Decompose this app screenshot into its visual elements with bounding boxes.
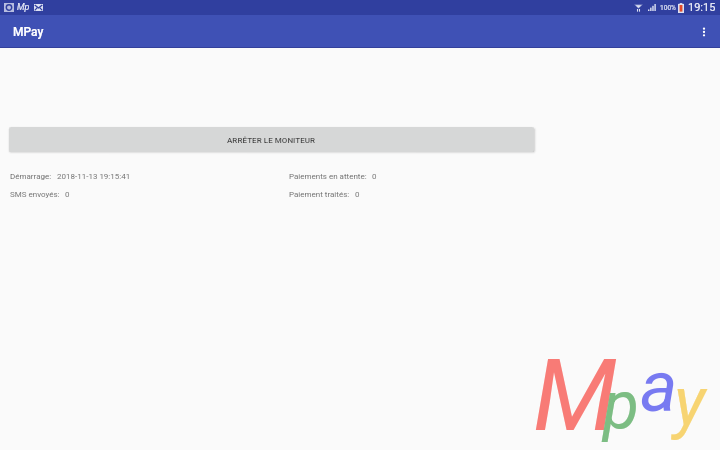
staticText: 0	[355, 190, 360, 199]
staticText: 0	[65, 190, 70, 199]
staticText: 19:15	[688, 1, 716, 14]
staticText: SMS envoyés:	[10, 190, 60, 199]
staticText: a	[640, 345, 678, 428]
staticText: y	[674, 362, 706, 442]
staticText: Démarrage:	[10, 172, 52, 181]
staticText: 2018-11-13 19:15:41	[57, 172, 131, 181]
button[interactable]: ARRÊTER LE MONITEUR	[9, 127, 534, 152]
staticText: M	[533, 338, 617, 450]
staticText: 0	[372, 172, 377, 181]
staticText: Paiements en attente:	[289, 172, 367, 181]
staticText: Mp	[17, 2, 30, 13]
staticText: Paiement traités:	[289, 190, 350, 199]
button[interactable]: More options	[687, 15, 720, 48]
staticText: MPay	[13, 25, 44, 39]
staticText: ARRÊTER LE MONITEUR	[227, 136, 316, 145]
staticText: 100%	[660, 4, 676, 12]
staticText: p	[603, 367, 639, 444]
